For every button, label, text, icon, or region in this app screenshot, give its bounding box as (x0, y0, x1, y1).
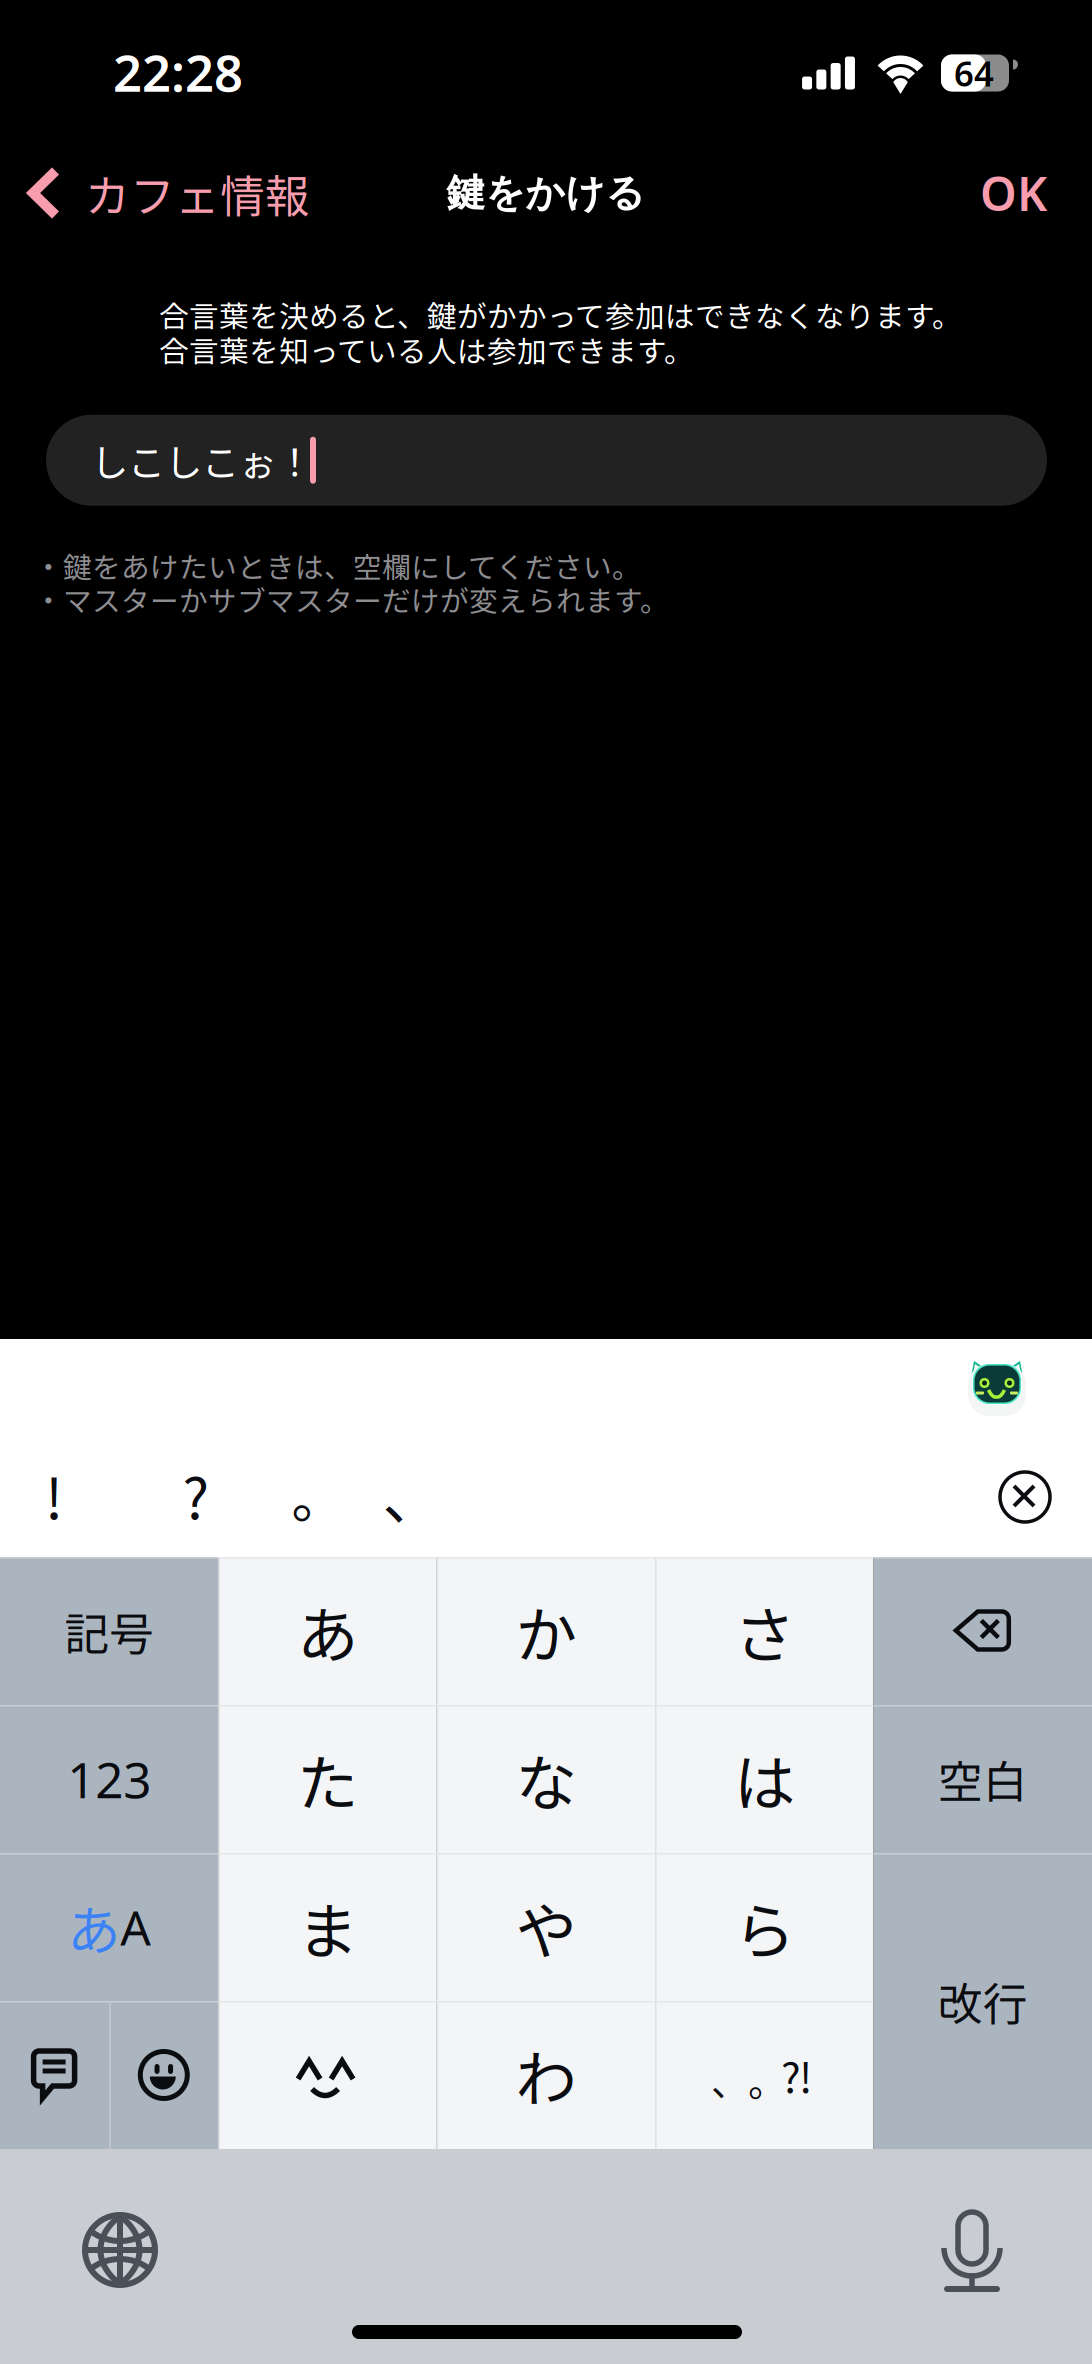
staticText: 64 (954, 50, 994, 96)
staticText: 改行 (938, 1969, 1028, 2033)
button[interactable]: Emoji (109, 2001, 218, 2149)
button[interactable]: ! (0, 1437, 108, 1553)
staticText: わ (515, 2031, 576, 2119)
staticText: ! (45, 1454, 63, 1536)
staticText: は (734, 1735, 795, 1823)
button[interactable]: か (437, 1557, 655, 1705)
staticText: 記号 (64, 1599, 154, 1663)
staticText: 空白 (938, 1747, 1028, 1811)
button[interactable]: カフェ情報 (0, 143, 326, 243)
button[interactable]: Messages (0, 2001, 109, 2149)
button[interactable]: は (655, 1705, 874, 1853)
button[interactable]: ら (655, 1853, 874, 2001)
button[interactable]: Kaomoji (218, 2001, 437, 2149)
button[interactable]: あ (218, 1557, 437, 1705)
staticText: か (515, 1587, 576, 1675)
staticText: ・マスターかサブマスターだけが変えられます。 (34, 578, 669, 620)
staticText: しこしこぉ！ (91, 433, 313, 487)
button[interactable]: 123 (0, 1705, 218, 1853)
staticText: 合言葉を知っている人は参加できます。 (159, 328, 694, 371)
staticText: 123 (67, 1746, 151, 1812)
staticText: 、 (711, 2053, 748, 2107)
button[interactable]: Next keyboard (55, 2195, 185, 2305)
button[interactable]: Dismiss (980, 1441, 1070, 1553)
button[interactable]: ま (218, 1853, 437, 2001)
staticText: A (120, 1895, 151, 1959)
staticText: さ (734, 1587, 795, 1675)
staticText: 。 (748, 2053, 785, 2107)
staticText: OK (980, 162, 1047, 224)
staticText: ? (182, 1454, 209, 1536)
button[interactable]: 。 (268, 1437, 368, 1553)
staticText: 22:28 (113, 38, 243, 106)
button[interactable]: OK (935, 143, 1092, 243)
button[interactable]: わ (437, 2001, 655, 2149)
staticText: な (515, 1735, 576, 1823)
button[interactable]: 、 (655, 2001, 874, 2149)
button[interactable]: Sticker (952, 1345, 1042, 1431)
staticText: 鍵をかける (446, 169, 645, 217)
button[interactable]: 記号 (0, 1557, 218, 1705)
staticText: ま (297, 1883, 358, 1971)
staticText: 、 (382, 1451, 441, 1536)
staticText: 合言葉を決めると、鍵がかかって参加はできなくなります。 (159, 293, 962, 336)
button[interactable]: あ (0, 1853, 218, 2001)
button[interactable]: 空白 (874, 1705, 1092, 1853)
staticText: ! (799, 2045, 812, 2105)
staticText: ? (781, 2045, 801, 2105)
button[interactable]: さ (655, 1557, 874, 1705)
staticText: あ (297, 1587, 358, 1675)
staticText: や (515, 1883, 576, 1971)
button[interactable]: ? (142, 1437, 250, 1553)
staticText: カフェ情報 (85, 161, 310, 225)
button[interactable]: Dictation (907, 2195, 1037, 2305)
staticText: ら (734, 1883, 795, 1971)
button[interactable]: 改行 (874, 1853, 1092, 2149)
button[interactable]: 、 (362, 1437, 462, 1553)
button[interactable]: な (437, 1705, 655, 1853)
button[interactable]: や (437, 1853, 655, 2001)
staticText: ・鍵をあけたいときは、空欄にしてください。 (34, 545, 641, 586)
staticText: 。 (291, 1456, 344, 1534)
button[interactable]: Delete (874, 1557, 1092, 1705)
staticText: あ (67, 1888, 120, 1966)
button[interactable]: た (218, 1705, 437, 1853)
staticText: た (297, 1735, 358, 1823)
